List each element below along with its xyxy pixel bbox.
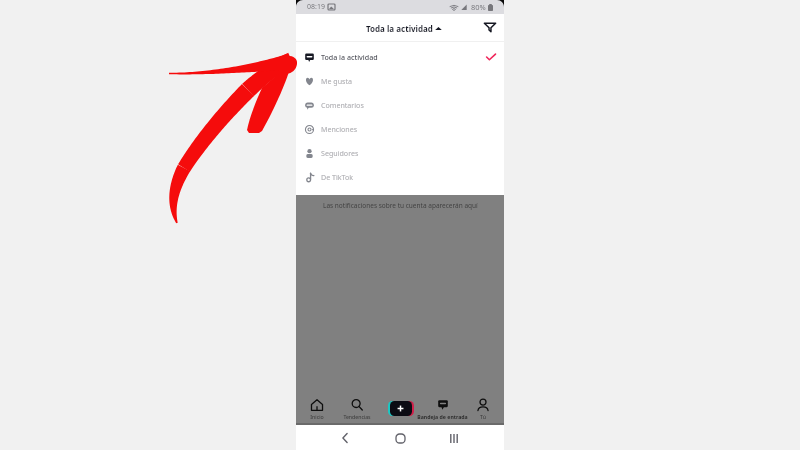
- staticText: Tendencias: [343, 413, 371, 420]
- button[interactable]: Menciones: [296, 117, 504, 141]
- staticText: Las notificaciones sobre tu cuenta apare…: [323, 201, 478, 210]
- staticText: Bandeja de entrada: [417, 413, 468, 420]
- staticText: Seguidores: [321, 148, 359, 158]
- button[interactable]: Tú: [453, 391, 513, 424]
- button[interactable]: Inicio: [391, 429, 409, 447]
- staticText: Toda la actividad: [321, 52, 378, 62]
- staticText: Me gusta: [321, 76, 352, 86]
- staticText: Toda la actividad: [366, 23, 433, 34]
- staticText: Menciones: [321, 124, 358, 134]
- button[interactable]: Seguidores: [296, 141, 504, 165]
- button[interactable]: Bandeja de entrada: [412, 391, 472, 424]
- button[interactable]: Filtrar: [481, 18, 499, 36]
- button[interactable]: Toda la actividad: [296, 45, 504, 69]
- button[interactable]: De TikTok: [296, 165, 504, 189]
- button[interactable]: Comentarios: [296, 93, 504, 117]
- button[interactable]: Toda la actividad: [366, 23, 442, 34]
- button[interactable]: Recientes: [445, 429, 463, 447]
- button[interactable]: Me gusta: [296, 69, 504, 93]
- staticText: 08:19: [307, 2, 325, 12]
- button[interactable]: Atrás: [336, 429, 354, 447]
- staticText: De TikTok: [321, 172, 354, 182]
- staticText: 80%: [471, 2, 486, 12]
- staticText: Comentarios: [321, 100, 364, 110]
- staticText: Tú: [480, 413, 486, 420]
- staticText: Inicio: [310, 413, 324, 420]
- button[interactable]: Tendencias: [327, 391, 387, 424]
- button[interactable]: Inicio: [287, 391, 347, 424]
- button[interactable]: Crear: [388, 401, 413, 416]
